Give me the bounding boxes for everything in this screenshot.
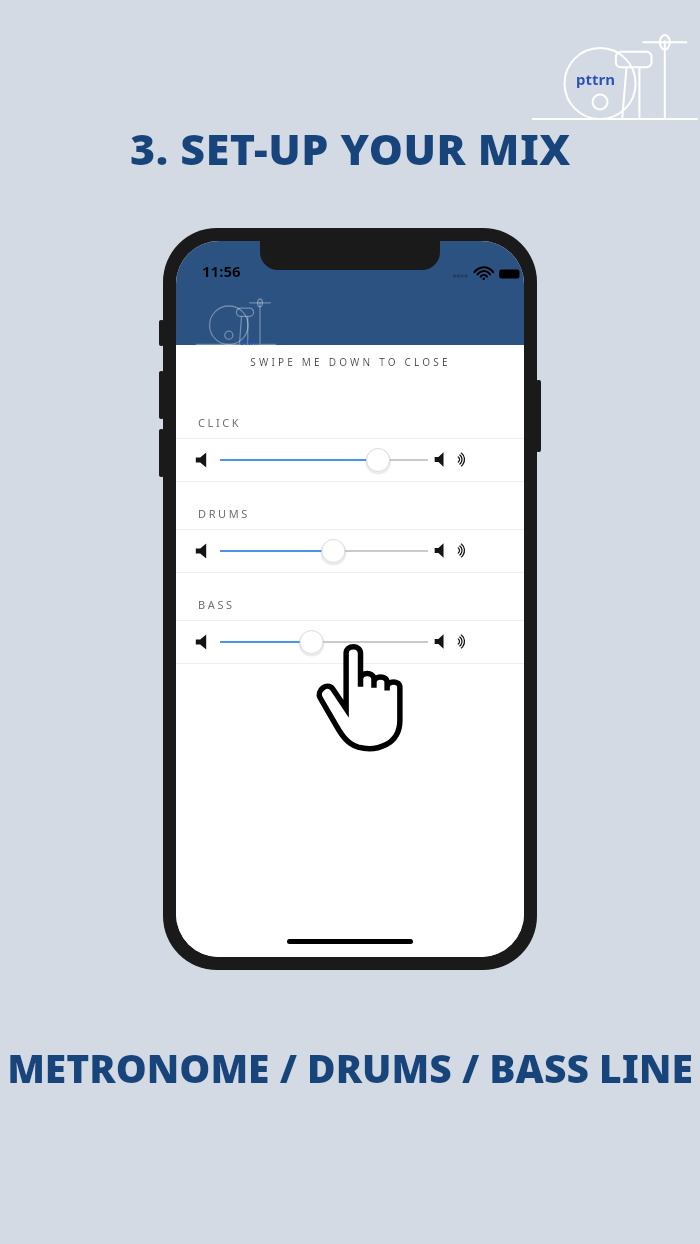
staticText: SWIPE ME DOWN TO CLOSE bbox=[250, 355, 451, 369]
staticText: 3. SET-UP YOUR MIX bbox=[130, 119, 571, 178]
button[interactable]: BASS volume slider bbox=[176, 621, 524, 663]
staticText: pttrn bbox=[576, 69, 615, 89]
button[interactable]: CLICK volume slider bbox=[176, 439, 524, 481]
staticText: DRUMS bbox=[198, 506, 250, 521]
button[interactable]: SWIPE ME DOWN TO CLOSE bbox=[176, 345, 524, 379]
staticText: BASS bbox=[198, 597, 235, 612]
staticText: CLICK bbox=[198, 415, 242, 430]
button[interactable]: DRUMS volume slider bbox=[176, 530, 524, 572]
staticText: METRONOME / DRUMS / BASS LINE bbox=[7, 1041, 693, 1094]
staticText: 11:56 bbox=[202, 261, 241, 281]
staticText: pttrn bbox=[240, 338, 259, 348]
